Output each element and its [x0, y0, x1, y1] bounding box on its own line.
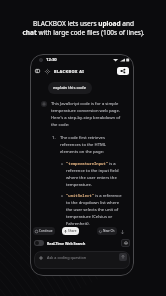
staticText: Real-Time Web Search	[47, 241, 86, 246]
staticText: explain this code	[53, 85, 87, 91]
staticText: BLACKBOX lets users upload and chat with…	[22, 19, 145, 37]
staticText: Share	[68, 229, 77, 233]
staticText: "temperatureInput" is a reference to the…	[66, 161, 122, 188]
button[interactable]: Share	[62, 227, 79, 235]
staticText: 12:30	[46, 57, 57, 63]
button[interactable]: Agent mode	[121, 239, 130, 247]
staticText: The code first retrieves references to t…	[60, 135, 122, 155]
button[interactable]: Continue	[33, 227, 55, 235]
button[interactable]: Share	[117, 67, 129, 75]
staticText: BLACKBOX AI	[54, 69, 85, 74]
staticText: 1.	[52, 135, 56, 141]
staticText: "unitSelect" is a reference to the dropd…	[66, 193, 122, 227]
button[interactable]: Menu	[33, 67, 41, 75]
button[interactable]: Real-Time Web Search toggle	[34, 240, 44, 246]
button[interactable]: Download	[120, 229, 125, 234]
button[interactable]: explain this code	[48, 82, 92, 94]
staticText: Continue	[39, 229, 53, 233]
button[interactable]: Ask a coding question	[34, 251, 130, 269]
button[interactable]: New Ch	[97, 227, 117, 235]
staticText: New Ch	[103, 229, 115, 233]
staticText: Ask a coding question	[47, 255, 87, 260]
button[interactable]: Send	[119, 253, 127, 261]
staticText: This JavaScript code is for a simple tem…	[51, 101, 126, 128]
